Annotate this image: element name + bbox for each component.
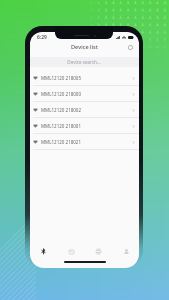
button[interactable]: Profile	[115, 243, 137, 260]
staticText: Device list	[71, 43, 98, 51]
staticText: MML12120 218002	[41, 107, 82, 113]
button[interactable]: MML12120 218001	[30, 118, 139, 134]
button[interactable]: Refresh device list	[126, 43, 135, 52]
staticText: MML12120 218005	[41, 75, 82, 81]
staticText: MML12120 218000	[41, 91, 82, 97]
button[interactable]: MML12120 218005	[30, 70, 139, 86]
staticText: MML12120 218001	[41, 123, 82, 129]
staticText: Device search...	[67, 59, 101, 65]
button[interactable]: Device list	[30, 41, 139, 53]
button[interactable]: MML12120 218000	[30, 86, 139, 102]
button[interactable]: Device search...	[30, 57, 139, 67]
staticText: MML12120 218021	[41, 139, 82, 145]
button[interactable]: Printers	[87, 243, 109, 260]
staticText: 6:29	[37, 34, 47, 41]
button[interactable]: Files	[60, 243, 82, 260]
button[interactable]: MML12120 218002	[30, 102, 139, 118]
button[interactable]: MML12120 218021	[30, 134, 139, 150]
button[interactable]: Devices	[32, 243, 54, 260]
